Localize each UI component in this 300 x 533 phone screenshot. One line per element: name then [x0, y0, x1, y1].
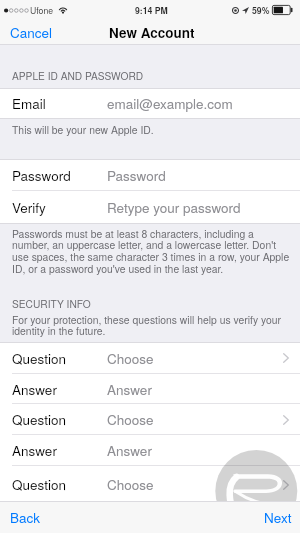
- staticText: Question: [12, 349, 66, 368]
- button[interactable]: Verify: [0, 191, 300, 224]
- button[interactable]: Next: [230, 501, 300, 533]
- staticText: Choose: [107, 410, 154, 429]
- staticText: Answer: [107, 380, 152, 399]
- button[interactable]: Answer: [0, 435, 300, 466]
- staticText: Answer: [12, 380, 57, 399]
- staticText: Question: [12, 410, 66, 429]
- staticText: Password: [107, 166, 166, 185]
- staticText: Answer: [12, 441, 57, 460]
- button[interactable]: Question: [0, 342, 300, 374]
- staticText: SECURITY INFO: [12, 296, 91, 311]
- staticText: Choose: [107, 349, 154, 368]
- staticText: email@example.com: [107, 94, 233, 113]
- staticText: New Account: [109, 23, 195, 42]
- staticText: Next: [264, 508, 292, 527]
- staticText: APPLE ID AND PASSWORD: [12, 68, 144, 83]
- staticText: This will be your new Apple ID.: [12, 122, 154, 137]
- staticText: Cancel: [10, 23, 53, 42]
- button[interactable]: Password: [0, 159, 300, 191]
- staticText: Retype your password: [107, 198, 241, 217]
- button[interactable]: Email: [0, 88, 300, 119]
- staticText: Email: [12, 94, 46, 113]
- button[interactable]: Question: [0, 404, 300, 435]
- staticText: 59%: [252, 4, 270, 16]
- button[interactable]: Back: [0, 501, 70, 533]
- staticText: Question: [12, 475, 66, 494]
- staticText: Passwords must be at least 8 characters,…: [12, 226, 292, 276]
- staticText: 9:14 PM: [135, 4, 168, 16]
- button[interactable]: Cancel: [0, 20, 62, 45]
- staticText: Verify: [12, 198, 46, 217]
- staticText: Ufone: [30, 4, 54, 16]
- staticText: Answer: [107, 441, 152, 460]
- button[interactable]: Question: [0, 466, 300, 503]
- staticText: Password: [12, 166, 71, 185]
- staticText: For your protection, these questions wil…: [12, 312, 290, 338]
- staticText: Choose: [107, 475, 154, 494]
- button[interactable]: Answer: [0, 374, 300, 404]
- staticText: Back: [10, 508, 41, 527]
